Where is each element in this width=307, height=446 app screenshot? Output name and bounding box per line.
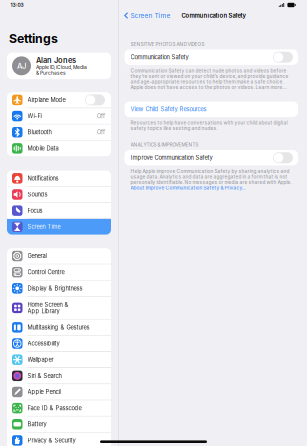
staticText: Communication Safety can detect nude pho… — [130, 68, 288, 90]
staticText: Off — [97, 129, 105, 135]
button[interactable]: Home Screen & — [7, 297, 111, 319]
button[interactable]: View Child Safety Resources — [124, 101, 298, 117]
button[interactable]: Notifications — [7, 170, 111, 186]
button[interactable]: Control Centre — [7, 264, 111, 280]
staticText: Resources to help have conversations wit… — [130, 120, 287, 131]
button[interactable]: Display & Brightness — [7, 280, 111, 296]
staticText: Sounds — [27, 191, 47, 198]
staticText: Improve Communication Safety — [130, 154, 212, 161]
staticText: Privacy & Security — [27, 437, 75, 444]
staticText: SENSITIVE PHOTOS AND VIDEOS — [130, 41, 204, 47]
staticText: Multitasking & Gestures — [27, 324, 89, 331]
staticText: Bluetooth — [27, 129, 51, 135]
staticText: Screen Time — [130, 12, 170, 19]
staticText: Screen Time — [27, 223, 60, 230]
button[interactable]: About Improve Communication Safety & Pri… — [118, 185, 245, 190]
button[interactable]: Wi-Fi — [7, 108, 111, 124]
button[interactable]: Battery — [7, 416, 111, 432]
button[interactable]: Accessibility — [7, 336, 111, 351]
staticText: Display & Brightness — [27, 285, 82, 292]
button[interactable]: Multitasking & Gestures — [7, 320, 111, 335]
button[interactable]: Improve Communication Safety — [124, 150, 298, 165]
button[interactable]: Privacy & Security — [7, 433, 111, 446]
staticText: Face ID & Passcode — [27, 405, 81, 411]
button[interactable]: Mobile Data — [7, 141, 111, 156]
button[interactable]: Siri & Search — [7, 368, 111, 384]
button[interactable]: Apple Pencil — [7, 384, 111, 400]
staticText: Wallpaper — [27, 356, 53, 363]
button[interactable]: AJ — [7, 53, 111, 79]
button[interactable]: Screen Time — [7, 219, 111, 235]
button[interactable]: Screen Time — [118, 12, 170, 19]
staticText: Wi-Fi — [27, 113, 41, 119]
button[interactable]: Communication Safety — [124, 49, 298, 65]
staticText: ANALYTICS & IMPROVEMENTS — [130, 142, 198, 147]
staticText: Siri & Search — [27, 372, 61, 379]
staticText: Notifications — [27, 175, 58, 182]
staticText: Communication Safety — [130, 54, 188, 60]
staticText: Settings — [9, 31, 58, 46]
staticText: Apple ID, iCloud, Media — [36, 64, 87, 70]
button[interactable]: Bluetooth — [7, 124, 111, 140]
staticText: Mobile Data — [27, 145, 58, 152]
button[interactable]: General — [7, 248, 111, 264]
staticText: Off — [97, 113, 105, 119]
button[interactable]: Focus — [7, 203, 111, 218]
button[interactable]: Face ID & Passcode — [7, 400, 111, 416]
button[interactable]: Airplane Mode — [7, 92, 111, 108]
staticText: Battery — [27, 421, 46, 428]
button[interactable]: Sounds — [7, 187, 111, 202]
staticText: & Purchases — [36, 70, 66, 76]
staticText: AJ — [17, 61, 26, 70]
staticText: Apple Pencil — [27, 389, 60, 395]
staticText: Alan Jones — [36, 56, 76, 64]
staticText: Help Apple improve Communication Safety … — [130, 168, 291, 185]
staticText: App Library — [27, 308, 59, 314]
staticText: Accessibility — [27, 340, 59, 347]
staticText: Focus — [27, 207, 42, 214]
staticText: 13:03 — [10, 2, 23, 8]
staticText: Airplane Mode — [27, 97, 65, 103]
staticText: Communication Safety — [181, 12, 245, 19]
staticText: Control Centre — [27, 269, 64, 275]
staticText: Home Screen & — [27, 301, 68, 308]
staticText: View Child Safety Resources — [130, 106, 206, 113]
staticText: About Improve Communication Safety & Pri… — [130, 185, 245, 190]
staticText: General — [27, 253, 46, 259]
button[interactable]: Wallpaper — [7, 352, 111, 368]
